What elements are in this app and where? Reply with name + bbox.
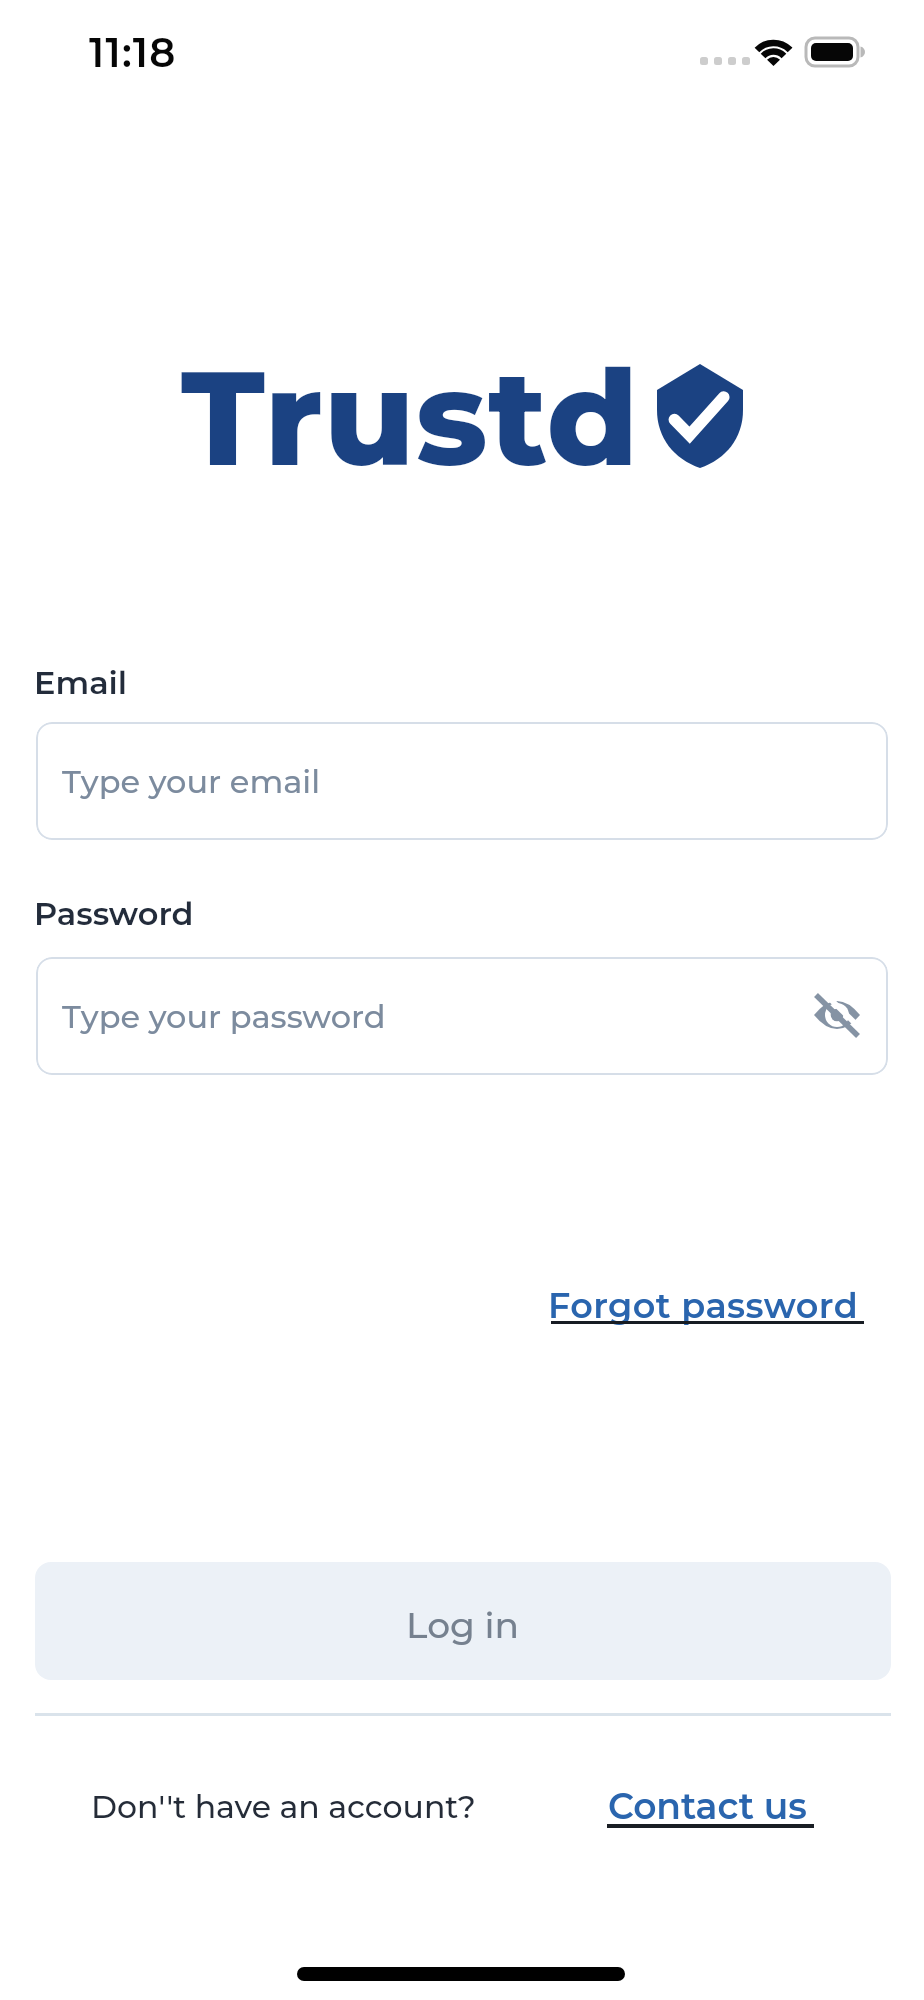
- button[interactable]: [812, 993, 862, 1038]
- staticText: 11:18: [89, 28, 177, 77]
- staticText: Type your password: [62, 997, 386, 1036]
- button[interactable]: Forgot password: [548, 1284, 859, 1327]
- staticText: Log in: [406, 1603, 520, 1647]
- staticText: Password: [34, 894, 194, 933]
- button[interactable]: Type your email: [36, 722, 888, 840]
- button[interactable]: Contact us: [608, 1784, 807, 1828]
- staticText: Email: [34, 663, 128, 702]
- button[interactable]: Type your password: [36, 957, 888, 1075]
- staticText: Don''t have an account?: [91, 1788, 476, 1826]
- staticText: Contact us: [608, 1784, 807, 1828]
- staticText: Forgot password: [548, 1284, 859, 1327]
- staticText: Trustd: [181, 337, 640, 498]
- button[interactable]: Log in: [35, 1562, 891, 1680]
- staticText: Type your email: [62, 762, 321, 801]
